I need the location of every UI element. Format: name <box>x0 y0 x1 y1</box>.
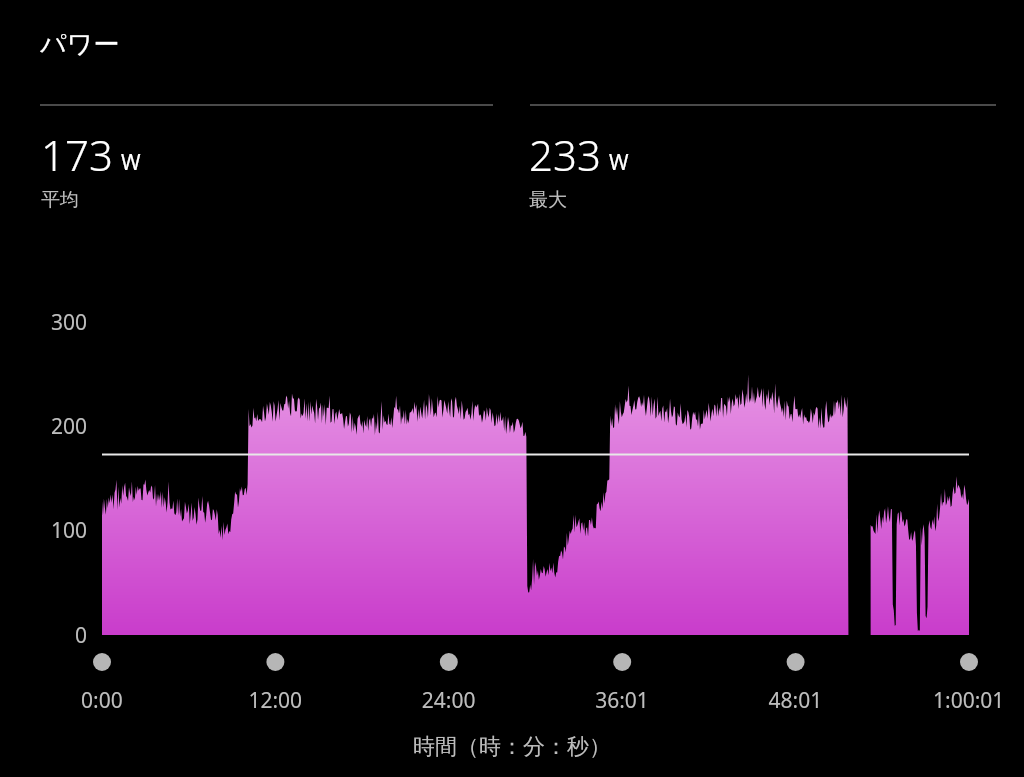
button[interactable] <box>0 0 1024 777</box>
